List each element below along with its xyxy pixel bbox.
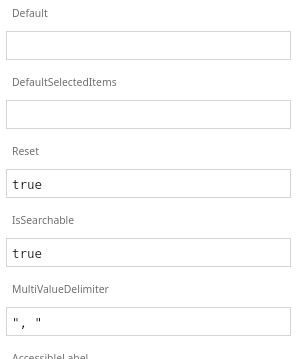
button[interactable]: Default input field xyxy=(6,31,291,60)
button[interactable]: AccessibleLabel xyxy=(12,351,303,359)
button[interactable]: MultiValueDelimiter xyxy=(12,282,303,296)
staticText: ", " xyxy=(12,315,43,330)
button[interactable]: Reset input field xyxy=(6,169,291,198)
staticText: true xyxy=(12,177,43,192)
staticText: DefaultSelectedItems xyxy=(12,75,117,89)
button[interactable]: Reset xyxy=(12,144,303,158)
button[interactable]: IsSearchable input field xyxy=(6,238,291,267)
button[interactable]: DefaultSelectedItems xyxy=(12,75,303,89)
staticText: true xyxy=(12,246,43,261)
staticText: Reset xyxy=(12,144,39,158)
button[interactable]: IsSearchable xyxy=(12,213,303,227)
button[interactable]: MultiValueDelimiter input field xyxy=(6,307,291,336)
staticText: AccessibleLabel xyxy=(12,351,89,359)
staticText: MultiValueDelimiter xyxy=(12,282,109,296)
button[interactable]: DefaultSelectedItems input field xyxy=(6,100,291,129)
staticText: IsSearchable xyxy=(12,213,75,227)
staticText: Default xyxy=(12,6,48,20)
button[interactable]: Default xyxy=(12,6,303,20)
